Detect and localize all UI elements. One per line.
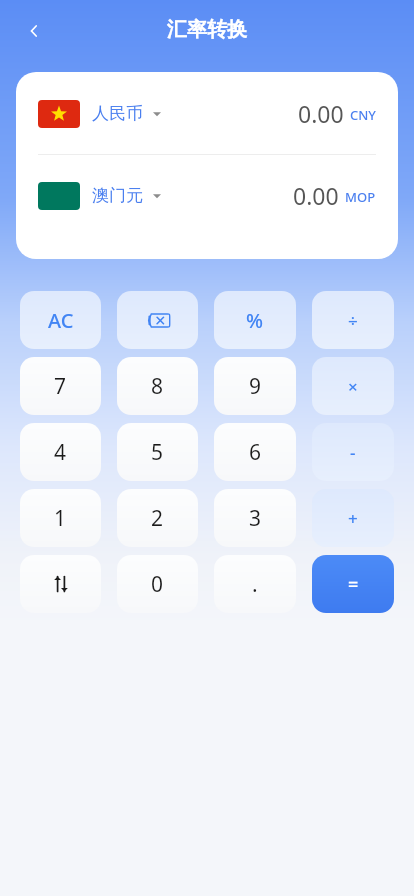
- button[interactable]: 2: [117, 489, 198, 547]
- staticText: 5: [151, 438, 164, 467]
- button[interactable]: Swap currencies: [20, 555, 101, 613]
- button[interactable]: 5: [117, 423, 198, 481]
- staticText: MOP: [345, 188, 376, 206]
- button[interactable]: 0: [117, 555, 198, 613]
- staticText: 0.00: [298, 98, 344, 129]
- button[interactable]: -: [312, 423, 394, 481]
- staticText: 0.00: [293, 180, 339, 211]
- staticText: 7: [54, 372, 67, 401]
- staticText: 汇率转换: [167, 17, 247, 42]
- button[interactable]: 4: [20, 423, 101, 481]
- staticText: 4: [54, 438, 67, 467]
- staticText: 人民币: [92, 103, 143, 124]
- button[interactable]: AC: [20, 291, 101, 349]
- staticText: 9: [249, 372, 262, 401]
- button[interactable]: 1: [20, 489, 101, 547]
- button[interactable]: Backspace: [117, 291, 198, 349]
- staticText: 6: [249, 438, 262, 467]
- staticText: %: [246, 307, 264, 334]
- staticText: 3: [249, 504, 262, 533]
- staticText: 8: [151, 372, 164, 401]
- button[interactable]: 9: [214, 357, 296, 415]
- staticText: CNY: [350, 106, 376, 124]
- button[interactable]: Back: [16, 13, 52, 49]
- button[interactable]: 澳门元: [16, 180, 398, 211]
- staticText: AC: [48, 307, 74, 334]
- button[interactable]: 3: [214, 489, 296, 547]
- button[interactable]: ÷: [312, 291, 394, 349]
- button[interactable]: 6: [214, 423, 296, 481]
- button[interactable]: +: [312, 489, 394, 547]
- button[interactable]: 7: [20, 357, 101, 415]
- button[interactable]: %: [214, 291, 296, 349]
- button[interactable]: 人民币: [16, 98, 398, 129]
- staticText: ÷: [348, 309, 358, 332]
- staticText: 0: [151, 570, 164, 599]
- staticText: ×: [348, 375, 358, 398]
- button[interactable]: =: [312, 555, 394, 613]
- staticText: 澳门元: [92, 185, 143, 206]
- staticText: 2: [151, 504, 164, 533]
- staticText: .: [252, 570, 258, 599]
- button[interactable]: 8: [117, 357, 198, 415]
- button[interactable]: .: [214, 555, 296, 613]
- staticText: -: [350, 441, 356, 464]
- staticText: +: [348, 507, 358, 530]
- button[interactable]: ×: [312, 357, 394, 415]
- staticText: 1: [54, 504, 67, 533]
- staticText: =: [348, 572, 359, 597]
